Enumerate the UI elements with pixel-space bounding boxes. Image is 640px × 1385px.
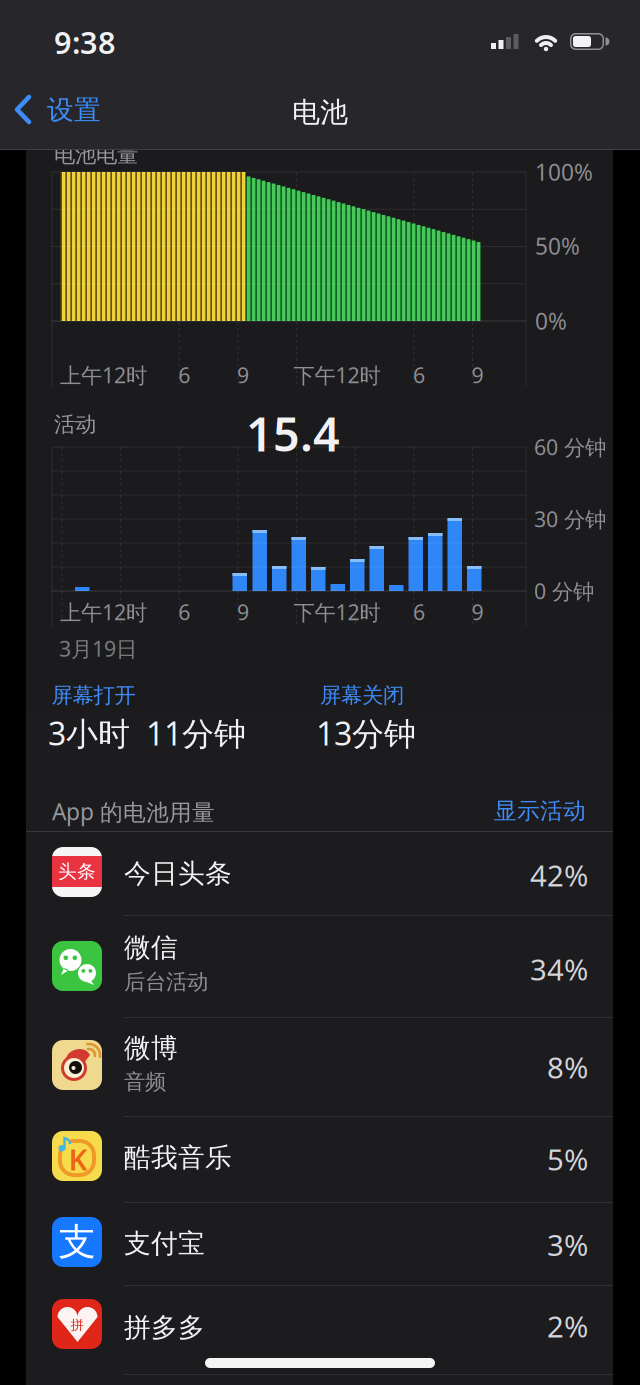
staticText: 拼多多 <box>124 1311 205 1344</box>
staticText: 9 <box>237 598 249 626</box>
staticText: 上午12时 <box>60 361 147 389</box>
staticText: 今日头条 <box>124 857 232 890</box>
staticText: 电池 <box>292 95 348 130</box>
staticText: 42% <box>530 855 588 894</box>
staticText: 0% <box>535 306 567 336</box>
staticText: 微博 <box>124 1032 178 1064</box>
staticText: 酷我音乐 <box>124 1141 232 1174</box>
staticText: 6 <box>413 361 425 389</box>
staticText: 电池电量 <box>54 142 138 168</box>
staticText: 屏幕关闭 <box>320 682 404 709</box>
staticText: 3% <box>547 1225 588 1264</box>
staticText: 头条 <box>58 860 96 883</box>
button[interactable]: 显示活动 <box>436 791 586 831</box>
staticText: 6 <box>178 598 190 626</box>
staticText: 6 <box>178 361 190 389</box>
staticText: 下午12时 <box>294 598 381 626</box>
staticText: 3月19日 <box>59 634 137 663</box>
staticText: 5% <box>547 1139 588 1178</box>
staticText: 60 分钟 <box>534 433 606 461</box>
staticText: 显示活动 <box>494 797 586 825</box>
staticText: 支 <box>58 1219 95 1265</box>
staticText: 3小时 11分钟 <box>48 712 246 754</box>
staticText: 2% <box>547 1306 588 1345</box>
button[interactable]: K <box>0 1116 640 1202</box>
staticText: 6 <box>413 598 425 626</box>
staticText: 下午12时 <box>294 361 381 389</box>
staticText: 音频 <box>124 1069 166 1095</box>
staticText: 9 <box>471 361 483 389</box>
staticText: 50% <box>535 231 580 261</box>
staticText: K <box>68 1139 87 1178</box>
staticText: 9:38 <box>54 22 116 62</box>
staticText: 100% <box>535 157 593 187</box>
staticText: 微信 <box>124 931 178 964</box>
staticText: 上午12时 <box>60 598 147 626</box>
staticText: 13分钟 <box>316 712 416 754</box>
staticText: 设置 <box>47 94 101 126</box>
staticText: 0 分钟 <box>534 577 594 605</box>
staticText: 30 分钟 <box>534 505 606 533</box>
button[interactable]: 微博 <box>0 1017 640 1116</box>
staticText: 支付宝 <box>124 1227 205 1260</box>
button[interactable]: 微信 <box>0 915 640 1017</box>
staticText: 15.4 <box>246 402 340 464</box>
staticText: 屏幕打开 <box>51 682 135 709</box>
staticText: 活动 <box>54 411 96 438</box>
button[interactable]: 设置 <box>0 86 150 134</box>
staticText: 9 <box>471 598 483 626</box>
staticText: 9 <box>237 361 249 389</box>
staticText: App 的电池用量 <box>52 796 215 827</box>
button[interactable]: 支 <box>0 1202 640 1285</box>
staticText: 后台活动 <box>124 969 208 995</box>
button[interactable]: 拼 <box>0 1285 640 1374</box>
button[interactable]: 头条 <box>0 831 640 915</box>
staticText: 拼 <box>70 1317 83 1333</box>
staticText: 34% <box>530 949 588 988</box>
staticText: 8% <box>547 1047 588 1086</box>
